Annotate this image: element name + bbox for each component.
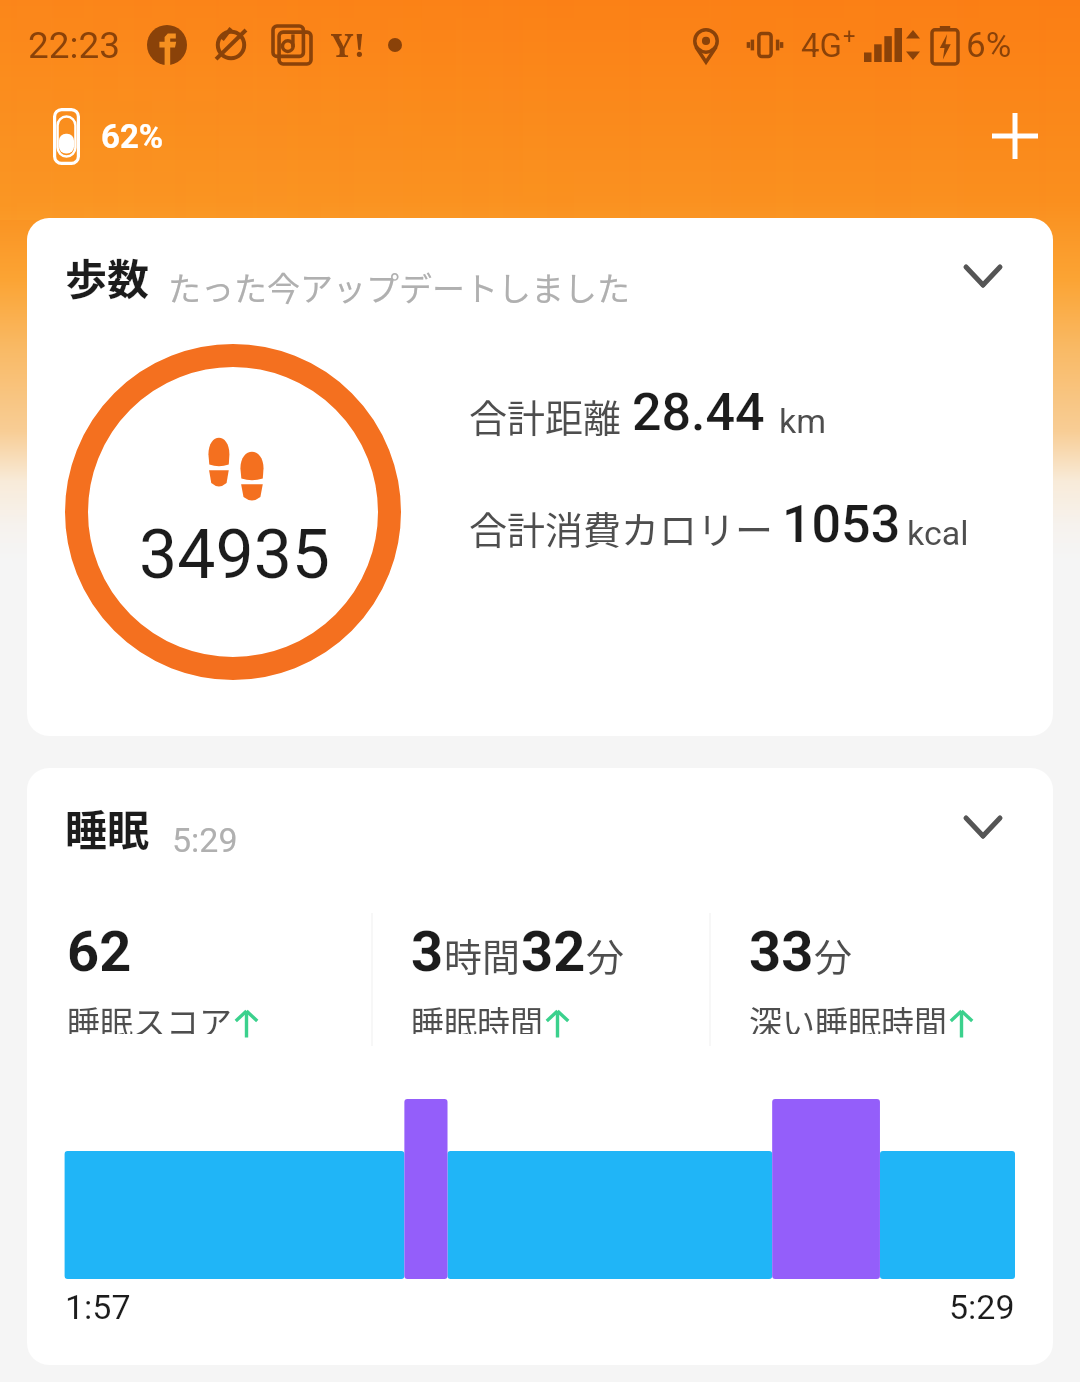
button[interactable]: Add (977, 98, 1053, 174)
staticText: km (779, 401, 827, 441)
staticText: 62% (101, 117, 164, 156)
staticText: + (843, 24, 856, 50)
staticText: 睡眠スコア (67, 997, 232, 1034)
staticText: 22:23 (28, 24, 121, 67)
staticText: 睡眠 (65, 797, 150, 858)
staticText: たった今アップデートしました (168, 263, 630, 311)
staticText: 34935 (139, 515, 331, 595)
staticText: 時間 (444, 927, 521, 982)
button[interactable]: 睡眠 (27, 768, 1053, 1365)
staticText: 睡眠時間 (411, 997, 543, 1034)
staticText: 歩数 (65, 246, 150, 307)
staticText: 6% (966, 25, 1012, 66)
staticText: kcal (907, 513, 969, 553)
staticText: 3 (411, 919, 444, 985)
staticText: 1:57 (65, 1287, 131, 1327)
staticText: 32 (521, 919, 586, 985)
staticText: 深い睡眠時間 (749, 997, 947, 1034)
staticText: 分 (814, 927, 853, 982)
staticText: 合計距離 (469, 388, 622, 443)
staticText: 5:29 (949, 1287, 1015, 1327)
staticText: 分 (586, 927, 625, 982)
staticText: 合計消費カロリー (469, 500, 774, 555)
staticText: Y! (331, 23, 366, 67)
staticText: 4G (801, 26, 843, 65)
button[interactable]: Collapse sleep (951, 795, 1015, 859)
staticText: 28.44 (632, 382, 765, 443)
staticText: 62 (67, 919, 132, 985)
button[interactable]: Band battery 62% (53, 108, 164, 165)
button[interactable]: 歩数 (27, 218, 1053, 736)
staticText: 5:29 (172, 820, 238, 860)
staticText: 1053 (782, 494, 901, 555)
button[interactable]: Collapse steps (951, 244, 1015, 308)
staticText: 33 (749, 919, 814, 985)
